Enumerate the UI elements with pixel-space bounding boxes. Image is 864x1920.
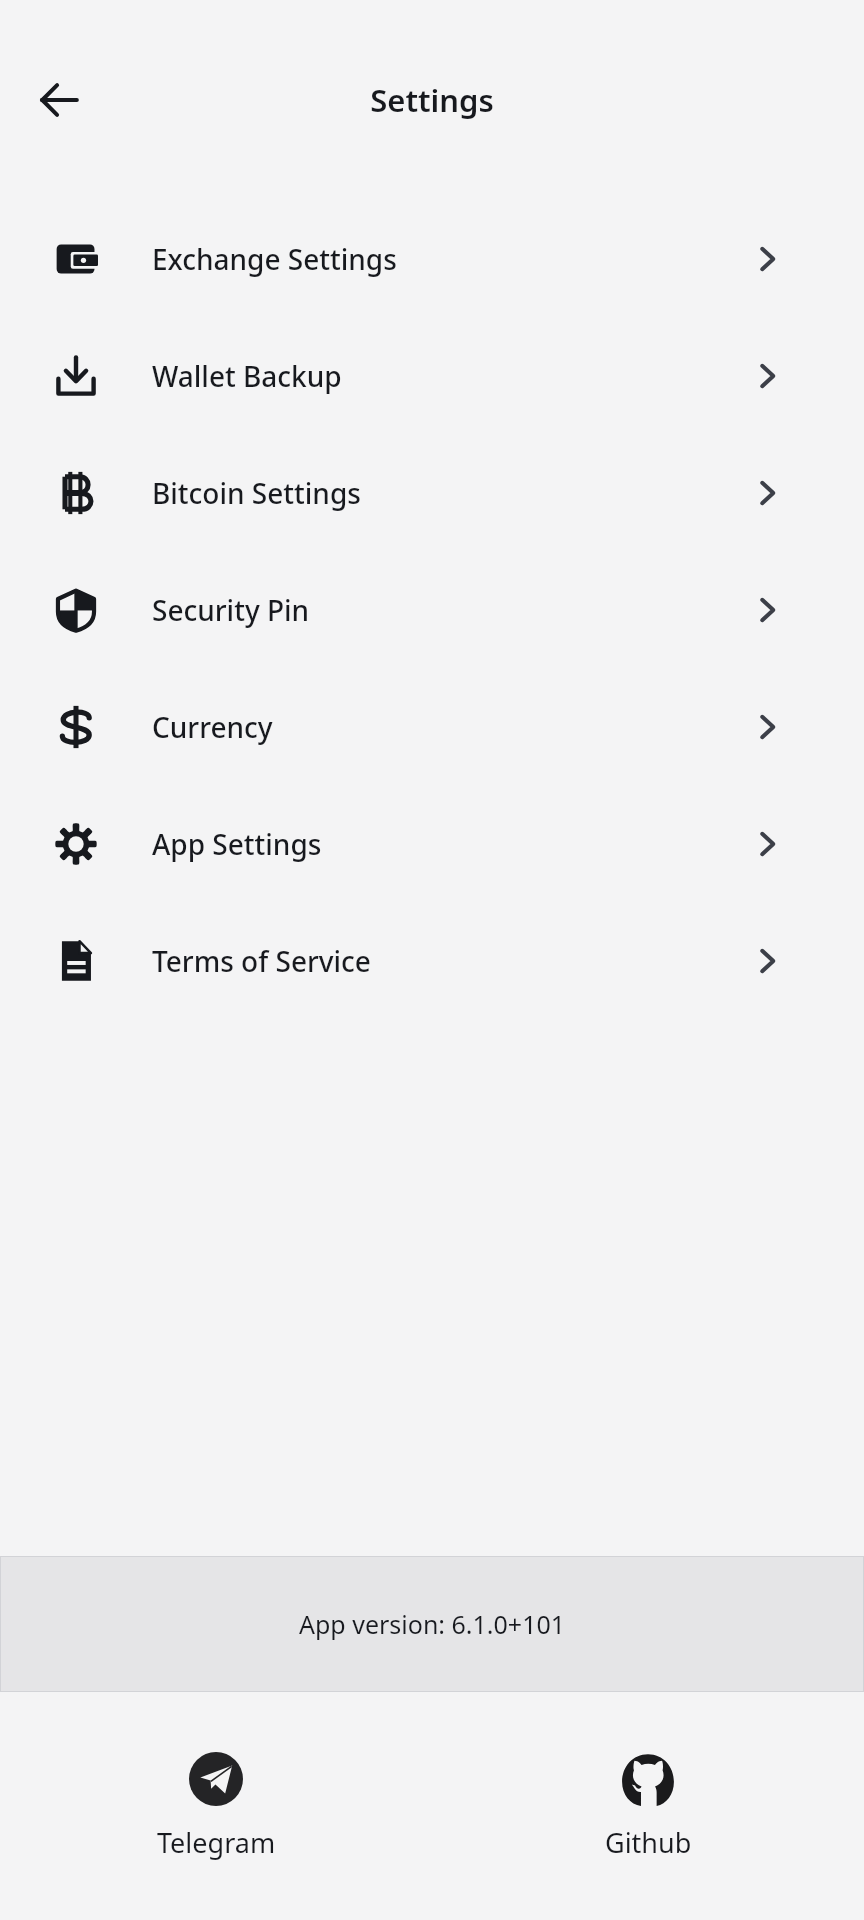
button[interactable]: Wallet Backup bbox=[0, 317, 864, 434]
staticText: Wallet Backup bbox=[152, 357, 342, 395]
button[interactable]: Currency bbox=[0, 668, 864, 785]
button[interactable]: Back bbox=[20, 61, 98, 139]
staticText: Telegram bbox=[157, 1824, 276, 1861]
button[interactable]: Security Pin bbox=[0, 551, 864, 668]
staticText: Security Pin bbox=[152, 591, 310, 629]
button[interactable]: Terms of Service bbox=[0, 902, 864, 1019]
staticText: App version: 6.1.0+101 bbox=[299, 1607, 566, 1641]
staticText: Github bbox=[605, 1824, 692, 1861]
staticText: Exchange Settings bbox=[152, 240, 397, 278]
staticText: Settings bbox=[370, 79, 494, 121]
staticText: Bitcoin Settings bbox=[152, 474, 361, 512]
button[interactable]: App version: 6.1.0+101 bbox=[0, 1556, 864, 1692]
staticText: App Settings bbox=[152, 825, 322, 863]
button[interactable]: Exchange Settings bbox=[0, 200, 864, 317]
staticText: Terms of Service bbox=[152, 942, 371, 980]
button[interactable]: Telegram bbox=[0, 1692, 432, 1920]
button[interactable]: Bitcoin Settings bbox=[0, 434, 864, 551]
button[interactable]: App Settings bbox=[0, 785, 864, 902]
button[interactable]: Github bbox=[432, 1692, 864, 1920]
staticText: Currency bbox=[152, 708, 273, 746]
